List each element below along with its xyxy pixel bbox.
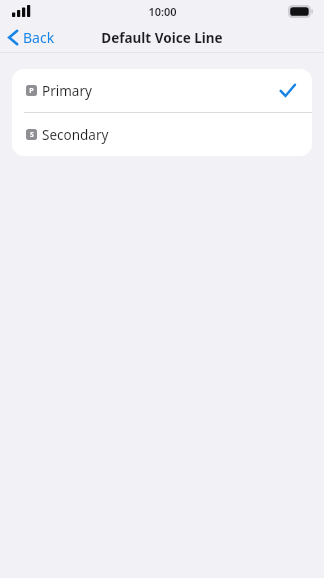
button[interactable]: S	[12, 113, 312, 156]
other: Selected	[279, 82, 296, 99]
staticText: S	[30, 130, 34, 140]
staticText: Primary	[42, 82, 92, 100]
button[interactable]: Back	[0, 22, 65, 53]
staticText: Default Voice Line	[101, 29, 223, 47]
staticText: 10:00	[148, 4, 177, 19]
button[interactable]: P	[12, 69, 312, 112]
staticText: Secondary	[42, 126, 109, 144]
staticText: Back	[23, 28, 55, 47]
staticText: P	[29, 86, 34, 96]
